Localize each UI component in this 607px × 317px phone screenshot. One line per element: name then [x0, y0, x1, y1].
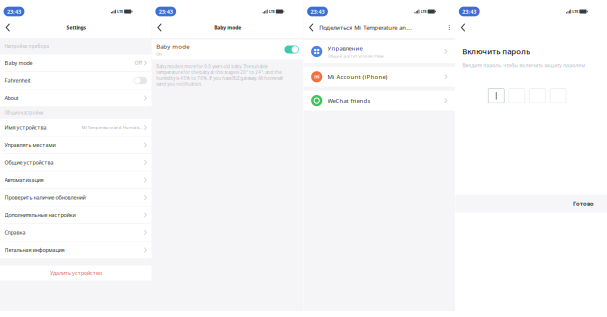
button[interactable]: Легальная информация	[0, 241, 152, 258]
button[interactable]: Имя устройства	[0, 119, 152, 136]
staticText: Общие настройки	[5, 110, 44, 116]
staticText: Baby mode	[214, 24, 241, 31]
staticText: Baby mode is more for 0-3 years old baby…	[156, 63, 283, 87]
button[interactable]: Back	[0, 17, 16, 38]
staticText: Введите пароль, чтобы включить защиту па…	[462, 62, 585, 69]
staticText: LTE	[572, 9, 578, 14]
staticText: On	[156, 51, 162, 57]
staticText: Удалить устройство	[50, 269, 102, 277]
staticText: Управлять местами	[5, 141, 56, 149]
button[interactable]: Проверить наличие обновлений	[0, 189, 152, 206]
staticText: Mi Account (iPhone)	[327, 73, 387, 81]
button[interactable]: Управление	[303, 40, 455, 63]
button[interactable]: Back	[303, 17, 319, 38]
staticText: 23:43	[159, 8, 173, 15]
staticText: LTE	[269, 9, 275, 14]
staticText: LTE	[420, 9, 426, 14]
staticText: LTE	[117, 9, 123, 14]
button[interactable]: More options	[443, 17, 455, 38]
staticText: About	[5, 94, 19, 102]
staticText: Настройки прибора	[5, 43, 49, 49]
staticText: 23:43	[7, 8, 21, 15]
staticText: Дополнительные настройки	[5, 211, 76, 219]
staticText: Mi Temperature and Humidit...	[82, 125, 142, 130]
staticText: Baby mode	[5, 59, 33, 67]
button[interactable]: Back	[455, 17, 471, 38]
button[interactable]: Fahrenheit	[0, 72, 152, 89]
button[interactable]: Удалить устройство	[0, 265, 152, 280]
button[interactable]: Общие устройства	[0, 154, 152, 171]
button[interactable]: Дополнительные настройки	[0, 206, 152, 223]
button[interactable]: Справка	[0, 224, 152, 241]
staticText: Легальная информация	[5, 246, 65, 254]
staticText: Имя устройства	[5, 124, 47, 131]
staticText: Off	[135, 60, 142, 66]
staticText: Управление	[327, 44, 362, 52]
button[interactable]: Автоматизация	[0, 171, 152, 188]
staticText: Общие устройства	[5, 159, 54, 166]
staticText: Общий доступ устройством	[327, 53, 383, 59]
staticText: Включить пароль	[462, 46, 530, 56]
staticText: Baby mode	[156, 42, 189, 50]
staticText: Готово	[573, 200, 594, 207]
staticText: Fahrenheit	[5, 77, 31, 84]
staticText: Settings	[66, 24, 85, 31]
staticText: Справка	[5, 229, 26, 236]
button[interactable]: mi	[303, 67, 455, 87]
staticText: Поделиться Mi Temperature an...	[319, 24, 412, 31]
staticText: Проверить наличие обновлений	[5, 194, 86, 201]
staticText: 23:43	[310, 8, 324, 15]
button[interactable]: Back	[152, 17, 168, 38]
button[interactable]: About	[0, 89, 152, 106]
button[interactable]: Baby mode	[152, 39, 304, 59]
staticText: WeChat friends	[327, 97, 370, 104]
staticText: mi	[314, 74, 319, 80]
button[interactable]: Управлять местами	[0, 136, 152, 153]
staticText: Автоматизация	[5, 176, 44, 184]
button[interactable]: Baby mode	[0, 54, 152, 71]
staticText: 23:43	[462, 8, 476, 15]
button[interactable]: WeChat friends	[303, 91, 455, 111]
button[interactable]: Готово	[565, 197, 607, 210]
